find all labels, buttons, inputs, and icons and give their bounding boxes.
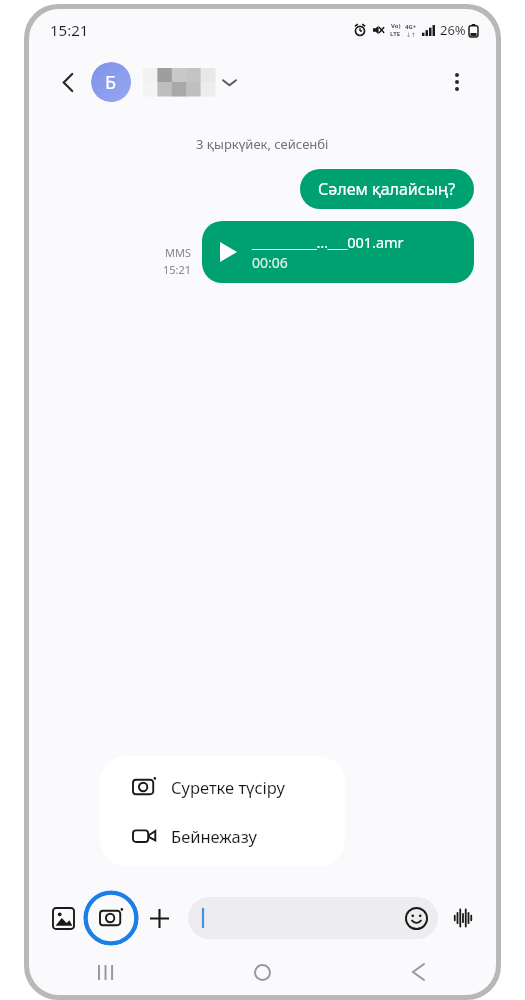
staticText: Vo) bbox=[391, 22, 401, 30]
button[interactable]: Бейнежазу bbox=[100, 811, 345, 860]
button[interactable]: More options bbox=[440, 65, 474, 99]
staticText: 15:21 bbox=[50, 20, 89, 40]
button[interactable]: Суретке түсіру bbox=[100, 762, 345, 811]
staticText: 15:21 bbox=[163, 262, 192, 277]
button[interactable]: Back bbox=[51, 65, 85, 99]
button[interactable]: Recent apps bbox=[29, 949, 184, 995]
staticText: Сәлем қалайсың? bbox=[318, 178, 456, 200]
staticText: 3 қыркүйек, сейсенбі bbox=[196, 135, 329, 153]
staticText: __________…___001.amr bbox=[252, 232, 404, 252]
staticText: ↓↑ bbox=[406, 31, 417, 38]
staticText: MMS bbox=[165, 245, 191, 260]
button[interactable]: Б bbox=[91, 62, 242, 102]
button[interactable]: Add attachment bbox=[139, 898, 179, 938]
button[interactable]: Emoji bbox=[403, 905, 429, 931]
button[interactable]: Back bbox=[340, 949, 496, 995]
button[interactable]: Play bbox=[202, 221, 474, 283]
staticText: 26% bbox=[440, 21, 466, 39]
other: Play bbox=[218, 242, 238, 262]
button[interactable]: Home bbox=[184, 949, 340, 995]
button[interactable]: Emoji bbox=[188, 897, 438, 939]
staticText: Суретке түсіру bbox=[171, 776, 285, 798]
button[interactable]: Voice message bbox=[444, 899, 482, 937]
staticText: 00:06 bbox=[252, 253, 288, 272]
button[interactable]: Gallery bbox=[43, 898, 83, 938]
staticText: LTE bbox=[390, 30, 401, 38]
staticText: 4G+ bbox=[405, 23, 417, 31]
staticText: Б bbox=[105, 70, 117, 95]
staticText: Бейнежазу bbox=[171, 825, 258, 847]
button[interactable]: Сәлем қалайсың? bbox=[300, 169, 474, 209]
button[interactable]: Camera bbox=[83, 890, 139, 946]
